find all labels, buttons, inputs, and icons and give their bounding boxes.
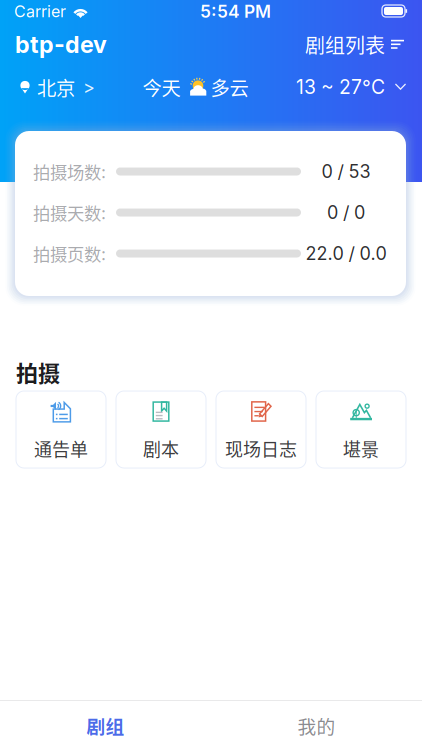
button[interactable]: 剧组 bbox=[0, 701, 211, 750]
staticText: 现场日志 bbox=[225, 435, 297, 462]
staticText: 剧本 bbox=[143, 435, 179, 462]
button[interactable]: 剧组列表 bbox=[305, 23, 404, 66]
staticText: 堪景 bbox=[343, 435, 379, 462]
staticText: 0 / 53 bbox=[321, 161, 370, 182]
staticText: 拍摄场数: bbox=[33, 159, 106, 184]
button[interactable]: 剧本 bbox=[116, 391, 206, 468]
staticText: 22.0 / 0.0 bbox=[305, 243, 386, 264]
staticText: 剧组 bbox=[86, 712, 124, 739]
button[interactable]: 我的 bbox=[211, 701, 422, 750]
staticText: btp-dev bbox=[15, 30, 107, 59]
staticText: 0 / 0 bbox=[327, 202, 365, 223]
button[interactable]: 现场日志 bbox=[216, 391, 306, 468]
staticText: 北京 bbox=[37, 73, 75, 101]
button[interactable]: 通告单 bbox=[16, 391, 106, 468]
staticText: 5:54 PM bbox=[200, 1, 271, 22]
staticText: 拍摄天数: bbox=[33, 200, 106, 225]
staticText: > bbox=[83, 76, 95, 98]
staticText: 今天 bbox=[142, 73, 180, 101]
button[interactable]: 堪景 bbox=[316, 391, 406, 468]
staticText: 我的 bbox=[297, 712, 335, 739]
staticText: 拍摄 bbox=[16, 356, 60, 388]
staticText: Carrier bbox=[14, 2, 66, 21]
button[interactable]: 13 ~ 27°C bbox=[296, 68, 406, 106]
staticText: 剧组列表 bbox=[305, 30, 385, 59]
button[interactable]: 北京 bbox=[20, 66, 95, 108]
staticText: 拍摄页数: bbox=[33, 241, 106, 266]
staticText: 通告单 bbox=[34, 435, 88, 462]
staticText: 13 ~ 27°C bbox=[296, 75, 385, 99]
staticText: 多云 bbox=[210, 73, 248, 101]
